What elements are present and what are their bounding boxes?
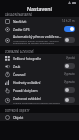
button[interactable]: Vypnuto	[64, 37, 75, 43]
button[interactable]: Navštívit	[0, 17, 79, 25]
button[interactable]: Zvuk	[0, 62, 79, 70]
staticText: Zvolte GPS	[13, 27, 30, 31]
staticText: DOTYKOVÉ OBJEKTY	[5, 109, 30, 113]
staticText: Vypnuto	[64, 80, 75, 84]
staticText: Vypnuto	[64, 72, 75, 76]
button[interactable]: Zapnuto	[64, 26, 75, 32]
staticText: Vysoká	[66, 56, 75, 60]
button[interactable]: Velikost fotografie	[0, 54, 79, 62]
button[interactable]: Objekt	[0, 113, 79, 121]
button[interactable]: Hodnoty ovládání	[0, 78, 79, 86]
staticText: Nastavení	[27, 5, 52, 12]
button[interactable]: Časovač	[0, 70, 79, 78]
staticText: ZOBRAZENÍ A ZVUKOVÉ	[5, 50, 34, 54]
staticText: 14 h 21 m	[62, 19, 75, 23]
staticText: Časovač	[13, 72, 26, 76]
staticText: Navštívit	[13, 19, 27, 23]
staticText: Automaticky přenos vzdálenost i záznam k…	[13, 39, 59, 45]
staticText: Zachovat ovládání	[13, 96, 41, 100]
staticText: Vypínat automaticky při dotyku obrazovky	[13, 101, 60, 104]
staticText: Zvuk	[13, 64, 21, 68]
button[interactable]: Pozadí dotykem	[0, 86, 79, 94]
staticText: Pozadí dotykem	[13, 88, 38, 92]
button[interactable]: Vypnuto	[64, 63, 75, 69]
staticText: Objekt	[13, 115, 24, 119]
button[interactable]: Vypnuto	[64, 97, 75, 103]
staticText: Hodnoty ovládání	[13, 80, 41, 84]
button[interactable]: Automatický přenos vzdálenosti	[0, 33, 79, 46]
staticText: ZÁKLADNÍ NASTAVENÍ	[5, 13, 32, 17]
button[interactable]: Zvolte GPS	[0, 25, 79, 33]
button[interactable]: Vypnuto	[64, 87, 75, 93]
staticText: Automatický přenos vzdálenosti	[13, 34, 62, 38]
button[interactable]: Zachovat ovládání	[0, 94, 79, 105]
staticText: Velikost fotografie	[13, 56, 42, 60]
